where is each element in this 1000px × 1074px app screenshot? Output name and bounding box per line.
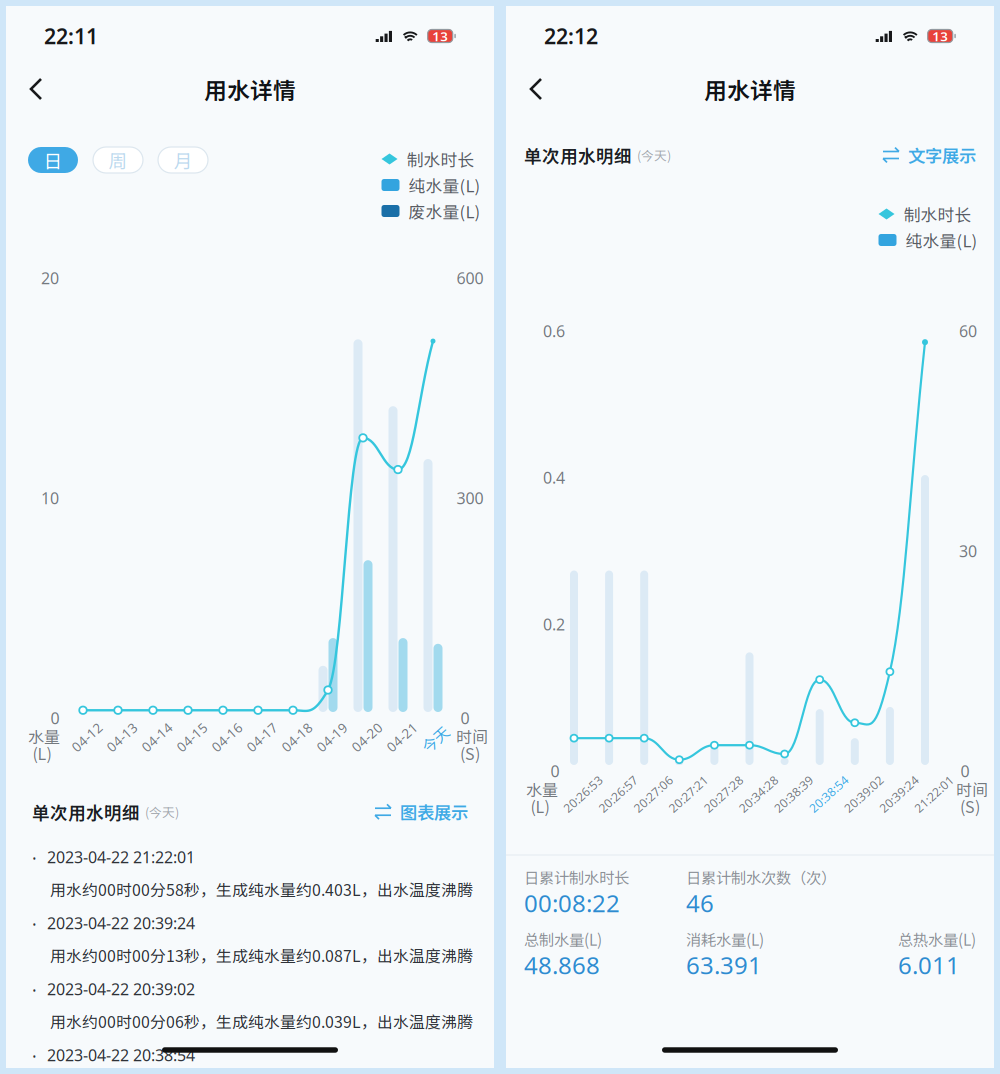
staticText: 周 (108, 146, 127, 173)
button[interactable]: Back (15, 68, 57, 110)
button[interactable]: 月 (158, 147, 208, 173)
staticText: 用水约00时00分58秒，生成纯水量约0.403L，出水温度沸腾 (50, 877, 473, 900)
staticText: (今天) (637, 146, 671, 164)
staticText: 300 (456, 487, 483, 509)
staticText: 04-14 (139, 728, 175, 746)
staticText: 04-20 (349, 728, 385, 746)
staticText: 消耗水量(L) (686, 928, 764, 950)
staticText: 20:26:57 (594, 786, 642, 802)
staticText: 0 (50, 707, 59, 729)
staticText: 0.4 (543, 467, 565, 488)
staticText: 单次用水明细 (32, 799, 140, 824)
staticText: 0.2 (543, 614, 565, 635)
staticText: 用水详情 (704, 73, 796, 105)
staticText: 0 (550, 760, 559, 782)
staticText: 用水详情 (204, 73, 296, 105)
staticText: 04-19 (314, 728, 350, 746)
staticText: 纯水量(L) (905, 228, 977, 252)
staticText: 图表展示 (400, 799, 468, 824)
staticText: 13 (432, 27, 448, 45)
staticText: 30 (959, 540, 977, 562)
staticText: 日累计制水次数（次） (686, 866, 836, 888)
staticText: 04-21 (384, 728, 420, 746)
staticText: 时间 (456, 724, 488, 748)
staticText: 用水约00时00分13秒，生成纯水量约0.087L，出水温度沸腾 (50, 943, 473, 966)
staticText: 63.391 (686, 949, 762, 981)
staticText: 04-13 (104, 728, 140, 746)
staticText: 总热水量(L) (898, 928, 976, 950)
staticText: · (32, 846, 37, 869)
staticText: 0.6 (543, 320, 565, 342)
staticText: 2023-04-22 20:39:02 (47, 978, 195, 1000)
staticText: 13 (932, 27, 948, 45)
staticText: 0 (960, 760, 969, 782)
staticText: 纯水量(L) (408, 173, 480, 197)
staticText: 制水时长 (406, 147, 474, 171)
staticText: (L) (32, 741, 51, 765)
staticText: · (32, 978, 37, 1001)
staticText: 04-18 (279, 728, 315, 746)
staticText: 时间 (956, 777, 988, 801)
staticText: 今天 (420, 728, 450, 750)
staticText: 04-17 (244, 728, 280, 746)
staticText: 22:11 (44, 22, 98, 50)
staticText: 20:27:06 (629, 786, 677, 802)
staticText: (今天) (145, 803, 179, 821)
button[interactable]: 日 (28, 147, 78, 173)
staticText: 日累计制水时长 (524, 866, 629, 888)
staticText: 20:34:28 (734, 786, 782, 802)
staticText: 单次用水明细 (524, 142, 632, 168)
staticText: · (32, 1044, 37, 1067)
staticText: 20 (41, 267, 59, 289)
staticText: 2023-04-22 20:38:54 (47, 1044, 195, 1066)
staticText: (S) (960, 794, 980, 818)
staticText: 月 (173, 146, 192, 173)
staticText: 20:39:02 (840, 786, 888, 802)
staticText: 2023-04-22 20:39:24 (47, 912, 195, 934)
staticText: 用水约00时00分06秒，生成纯水量约0.039L，出水温度沸腾 (50, 1009, 473, 1032)
button[interactable]: 周 (93, 147, 143, 173)
staticText: 0 (460, 707, 469, 729)
staticText: 2023-04-22 21:22:01 (47, 846, 195, 868)
staticText: 日 (43, 146, 62, 173)
staticText: 21:22:01 (910, 786, 958, 802)
staticText: 10 (41, 487, 59, 509)
staticText: 20:27:28 (699, 786, 747, 802)
staticText: 20:38:39 (770, 786, 818, 802)
staticText: 6.011 (898, 949, 960, 981)
staticText: 22:12 (544, 22, 598, 50)
staticText: 20:27:21 (664, 786, 712, 802)
staticText: (L) (530, 794, 549, 818)
staticText: 废水量(L) (408, 199, 480, 223)
button[interactable]: 文字展示 (882, 142, 976, 168)
button[interactable]: 图表展示 (374, 799, 468, 824)
staticText: 水量 (526, 777, 558, 801)
staticText: 00:08:22 (524, 887, 620, 919)
staticText: 水量 (28, 724, 60, 748)
staticText: 20:38:54 (805, 786, 853, 802)
staticText: 制水时长 (903, 202, 971, 226)
staticText: 48.868 (524, 949, 600, 981)
staticText: 20:26:53 (559, 786, 607, 802)
staticText: (S) (460, 741, 480, 765)
staticText: · (32, 912, 37, 935)
staticText: 04-15 (174, 728, 210, 746)
staticText: 600 (456, 267, 483, 289)
staticText: 60 (959, 320, 977, 342)
button[interactable]: Back (515, 68, 557, 110)
staticText: 04-16 (209, 728, 245, 746)
staticText: 文字展示 (908, 142, 976, 168)
staticText: 总制水量(L) (524, 928, 602, 950)
staticText: 04-12 (69, 728, 105, 746)
staticText: 20:39:24 (875, 786, 923, 802)
staticText: 46 (686, 887, 714, 919)
